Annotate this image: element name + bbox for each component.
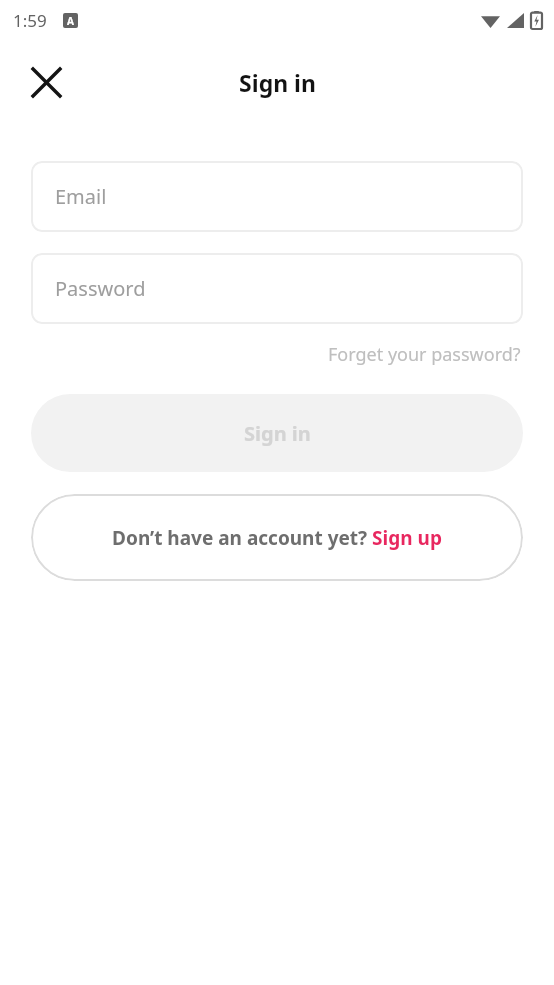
button[interactable]: Password xyxy=(31,253,523,324)
staticText: A xyxy=(67,14,74,28)
staticText: 1:59 xyxy=(13,9,47,32)
staticText: Sign in xyxy=(244,420,311,447)
staticText: Email xyxy=(55,183,107,210)
staticText: Don’t have an account yet? Sign up xyxy=(112,525,442,551)
button[interactable]: Sign in xyxy=(31,394,523,472)
staticText: Forget your password? xyxy=(328,342,521,367)
staticText: Password xyxy=(55,275,146,302)
button[interactable]: Forget your password? xyxy=(326,338,523,371)
button[interactable]: Don’t have an account yet? Sign up xyxy=(31,494,523,581)
button[interactable]: Email xyxy=(31,161,523,232)
staticText: Sign in xyxy=(239,67,316,98)
button[interactable]: Close xyxy=(17,53,75,111)
